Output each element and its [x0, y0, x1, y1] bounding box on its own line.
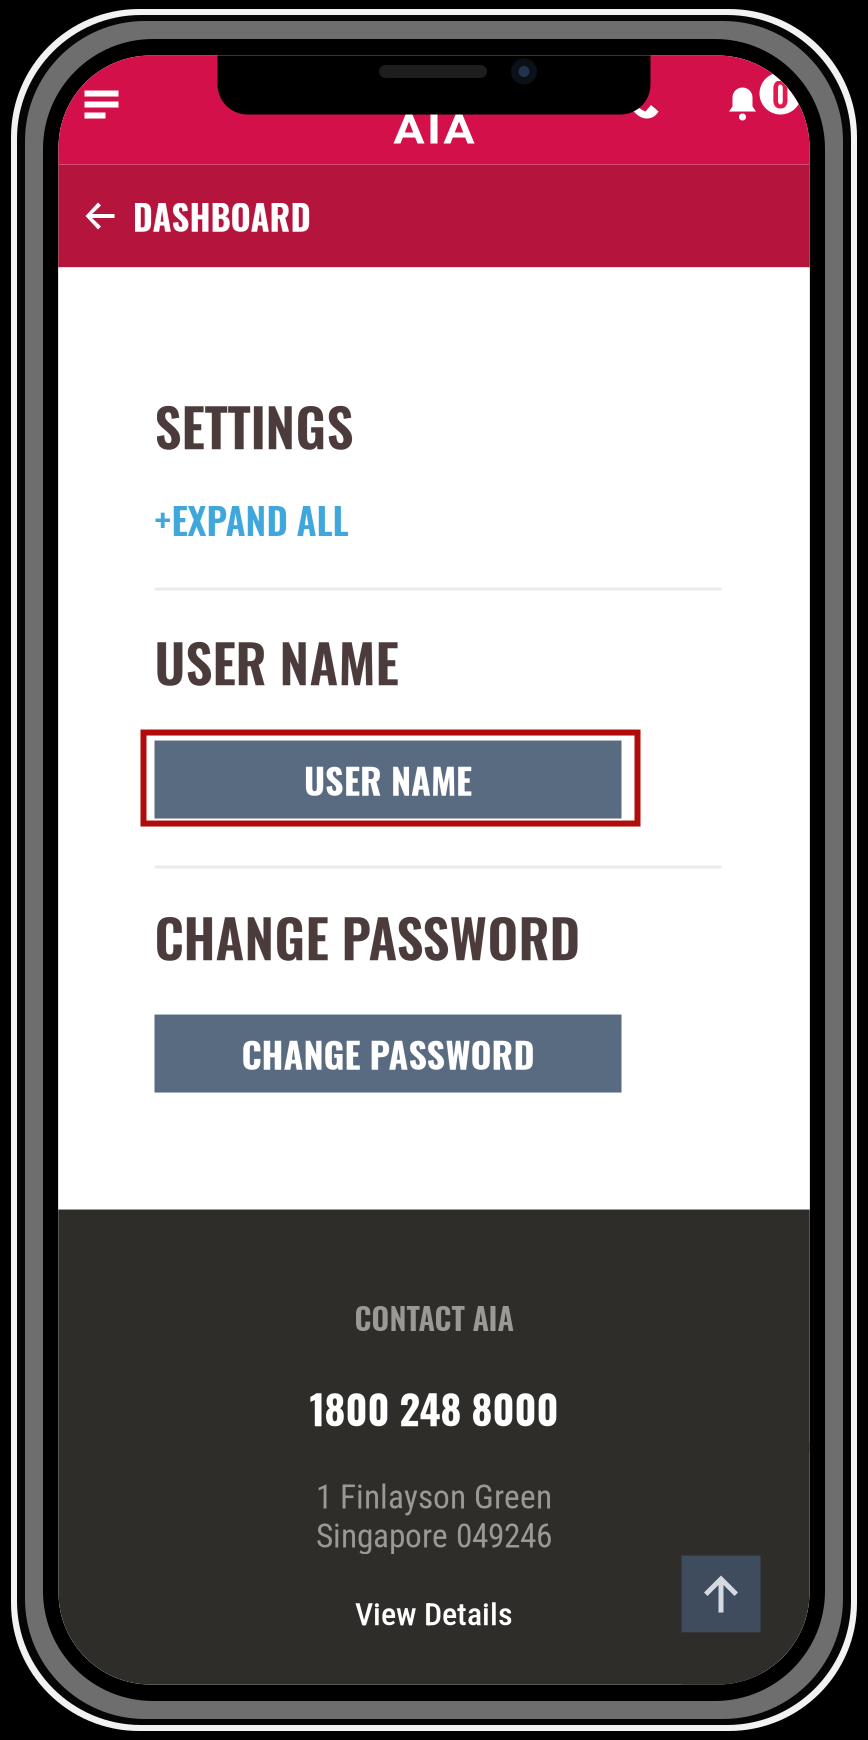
button[interactable]: 1800 248 8000: [58, 1372, 809, 1444]
staticText: USER NAME: [304, 753, 472, 806]
staticText: CHANGE PASSWORD: [154, 896, 580, 975]
staticText: View Details: [355, 1595, 513, 1633]
button[interactable]: USER NAME: [154, 740, 621, 818]
staticText: CONTACT AIA: [354, 1294, 513, 1340]
staticText: USER NAME: [154, 621, 398, 700]
staticText: 1800 248 8000: [309, 1378, 558, 1438]
button[interactable]: Menu: [62, 71, 140, 137]
button[interactable]: Back to Dashboard: [58, 164, 340, 267]
button[interactable]: CHANGE PASSWORD: [154, 1014, 621, 1092]
staticText: +EXPAND ALL: [154, 491, 348, 547]
staticText: CHANGE PASSWORD: [241, 1027, 534, 1080]
staticText: DASHBOARD: [132, 190, 310, 242]
staticText: Singapore 049246: [316, 1516, 552, 1556]
button[interactable]: Scroll to top: [681, 1555, 760, 1632]
staticText: 0: [771, 69, 789, 118]
button[interactable]: Alerts, 0 unread: [759, 72, 801, 114]
staticText: SETTINGS: [154, 385, 353, 464]
staticText: 1 Finlayson Green: [316, 1477, 552, 1517]
button[interactable]: View Details: [58, 1587, 809, 1641]
button[interactable]: Call AIA: [614, 76, 664, 126]
button[interactable]: +EXPAND ALL: [154, 481, 368, 557]
button[interactable]: Notifications: [715, 72, 769, 134]
